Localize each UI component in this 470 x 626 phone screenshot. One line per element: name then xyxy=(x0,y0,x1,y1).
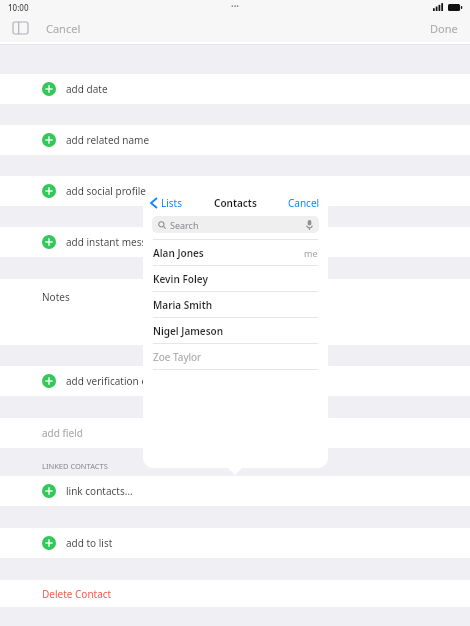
staticText: Contacts xyxy=(214,196,257,210)
staticText: Done xyxy=(430,21,458,36)
button[interactable]: Toggle sidebar xyxy=(10,18,30,38)
staticText: Alan Jones xyxy=(153,246,204,260)
button[interactable]: add related name xyxy=(0,125,470,155)
staticText: add to list xyxy=(66,536,113,550)
button[interactable]: add instant message xyxy=(0,227,470,257)
button[interactable]: Cancel xyxy=(44,17,83,40)
button[interactable]: Done xyxy=(428,17,460,40)
button[interactable]: Lists xyxy=(151,196,183,210)
staticText: add social profile xyxy=(66,184,146,198)
staticText: add related name xyxy=(66,133,150,147)
staticText: 10:00 xyxy=(8,2,29,13)
button[interactable]: Cancel xyxy=(288,196,320,210)
staticText: Zoe Taylor xyxy=(153,350,202,364)
button[interactable]: Search xyxy=(152,216,319,233)
button[interactable]: add to list xyxy=(0,528,470,558)
staticText: Delete Contact xyxy=(42,587,112,601)
staticText: Cancel xyxy=(46,21,81,36)
staticText: Lists xyxy=(161,196,183,210)
staticText: Notes xyxy=(42,290,70,304)
staticText: Maria Smith xyxy=(153,298,213,312)
button[interactable]: Zoe Taylor xyxy=(143,344,328,370)
staticText: me xyxy=(304,247,318,259)
staticText: Nigel Jameson xyxy=(153,324,224,338)
button[interactable]: add date xyxy=(0,74,470,104)
staticText: Cancel xyxy=(288,196,320,210)
other: Voice search xyxy=(306,220,313,230)
staticText: add field xyxy=(42,426,83,440)
staticText: add instant message xyxy=(66,235,164,249)
button[interactable]: Kevin Foley xyxy=(143,266,328,292)
button[interactable]: Notes xyxy=(0,279,470,345)
button[interactable]: Delete Contact xyxy=(0,580,470,607)
staticText: Kevin Foley xyxy=(153,272,208,286)
staticText: add date xyxy=(66,82,108,96)
button[interactable]: Nigel Jameson xyxy=(143,318,328,344)
button[interactable]: link contacts... xyxy=(0,476,470,506)
staticText: link contacts... xyxy=(66,484,133,498)
staticText: add verification code xyxy=(66,374,165,388)
staticText: Search xyxy=(170,219,199,231)
button[interactable]: Alan Jones xyxy=(143,240,328,266)
staticText: LINKED CONTACTS xyxy=(42,461,108,471)
staticText: ••• xyxy=(231,2,239,12)
button[interactable]: Maria Smith xyxy=(143,292,328,318)
button[interactable]: add verification code xyxy=(0,366,470,396)
button[interactable]: add field xyxy=(0,418,470,448)
button[interactable]: add social profile xyxy=(0,176,470,206)
